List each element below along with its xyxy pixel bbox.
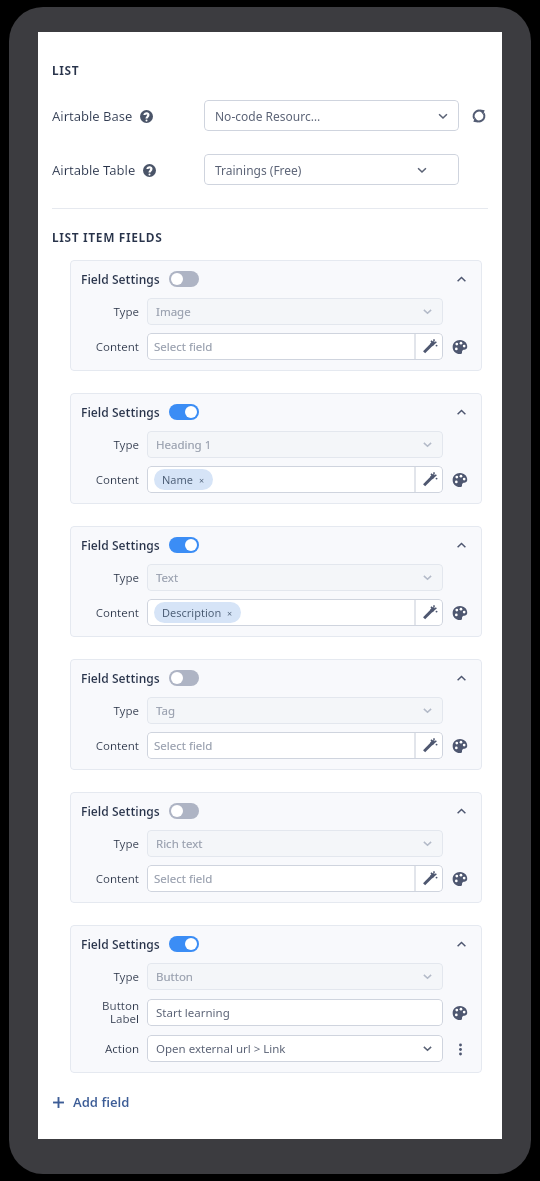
button[interactable]: Enabled — [169, 404, 199, 420]
staticText: No-code Resources (Softr.io Temp… — [215, 108, 323, 124]
staticText: Content — [81, 339, 139, 355]
staticText: Type — [81, 437, 139, 453]
button[interactable]: No-code Resources (Softr.io Temp… — [204, 100, 459, 131]
other: Styles — [452, 738, 468, 754]
button[interactable]: Trainings (Free) — [204, 154, 459, 185]
staticText: Open external url > Link — [156, 1041, 286, 1057]
button[interactable]: Field Settings — [70, 526, 482, 637]
button[interactable]: Description — [147, 599, 443, 626]
button[interactable]: Styles — [449, 1002, 471, 1024]
staticText: Field Settings — [81, 404, 160, 420]
staticText: Heading 1 — [156, 437, 212, 453]
staticText: Name — [162, 472, 194, 487]
button[interactable]: Auto fill — [415, 732, 443, 759]
button[interactable]: Start learning — [147, 999, 443, 1026]
staticText: Field Settings — [81, 670, 160, 686]
button[interactable]: Field Settings — [70, 659, 482, 770]
button[interactable]: Image — [147, 298, 443, 325]
button[interactable]: Field Settings — [70, 393, 482, 504]
staticText: Type — [81, 703, 139, 719]
button[interactable]: Field Settings — [70, 925, 482, 1073]
staticText: Start learning — [156, 1005, 230, 1021]
staticText: Add field — [73, 1093, 130, 1111]
staticText: Button Label — [81, 998, 139, 1027]
staticText: Airtable Table — [52, 161, 136, 179]
button[interactable]: Add field — [52, 1090, 130, 1114]
staticText: Type — [81, 304, 139, 320]
staticText: Airtable Base — [52, 107, 133, 125]
button[interactable]: Heading 1 — [147, 431, 443, 458]
button[interactable]: Name — [147, 466, 443, 493]
button[interactable]: Disabled — [169, 670, 199, 686]
button[interactable]: Styles — [449, 469, 471, 491]
button[interactable]: Collapse — [451, 934, 471, 954]
button[interactable]: Select field — [147, 732, 443, 759]
button[interactable]: Text — [147, 564, 443, 591]
other: Refresh — [470, 107, 488, 125]
staticText: Action — [81, 1041, 139, 1057]
other: Styles — [452, 472, 468, 488]
button[interactable]: Auto fill — [415, 865, 443, 892]
button[interactable]: Disabled — [169, 803, 199, 819]
button[interactable]: Field Settings — [70, 792, 482, 903]
staticText: × — [199, 474, 205, 486]
staticText: Trainings (Free) — [215, 162, 302, 178]
staticText: Field Settings — [81, 271, 160, 287]
button[interactable]: Open external url > Link — [147, 1035, 443, 1062]
staticText: Text — [156, 570, 179, 586]
button[interactable]: Button — [147, 963, 443, 990]
button[interactable]: Enabled — [169, 936, 199, 952]
staticText: Content — [81, 472, 139, 488]
staticText: Tag — [156, 703, 175, 719]
button[interactable]: Select field — [147, 333, 443, 360]
other: More options — [453, 1042, 468, 1057]
other: Styles — [452, 871, 468, 887]
other: Styles — [452, 1005, 468, 1021]
button[interactable]: Collapse — [451, 269, 471, 289]
other: Styles — [452, 339, 468, 355]
staticText: Select field — [154, 738, 213, 754]
button[interactable]: Rich text — [147, 830, 443, 857]
button[interactable]: Refresh — [469, 105, 488, 127]
button[interactable]: Styles — [449, 336, 471, 358]
button[interactable]: Select field — [147, 865, 443, 892]
staticText: Content — [81, 605, 139, 621]
staticText: Field Settings — [81, 936, 160, 952]
staticText: Content — [81, 871, 139, 887]
staticText: Type — [81, 570, 139, 586]
staticText: Content — [81, 738, 139, 754]
staticText: Field Settings — [81, 803, 160, 819]
staticText: Type — [81, 969, 139, 985]
staticText: Type — [81, 836, 139, 852]
staticText: Field Settings — [81, 537, 160, 553]
button[interactable]: More options — [449, 1038, 471, 1060]
button[interactable]: Tag — [147, 697, 443, 724]
button[interactable]: Auto fill — [415, 466, 443, 493]
button[interactable]: Collapse — [451, 801, 471, 821]
button[interactable]: Disabled — [169, 271, 199, 287]
button[interactable]: Collapse — [451, 668, 471, 688]
staticText: Description — [162, 605, 222, 620]
staticText: LIST — [52, 62, 80, 78]
button[interactable]: Styles — [449, 868, 471, 890]
staticText: Image — [156, 304, 191, 320]
button[interactable]: Auto fill — [415, 333, 443, 360]
staticText: Rich text — [156, 836, 203, 852]
staticText: Select field — [154, 339, 213, 355]
button[interactable]: Auto fill — [415, 599, 443, 626]
button[interactable]: Styles — [449, 602, 471, 624]
other: Styles — [452, 605, 468, 621]
staticText: × — [227, 607, 233, 619]
button[interactable]: Styles — [449, 735, 471, 757]
button[interactable]: Field Settings — [70, 260, 482, 371]
button[interactable]: Collapse — [451, 402, 471, 422]
staticText: Select field — [154, 871, 213, 887]
button[interactable]: Collapse — [451, 535, 471, 555]
button[interactable]: Enabled — [169, 537, 199, 553]
staticText: Button — [156, 969, 193, 985]
staticText: LIST ITEM FIELDS — [52, 229, 163, 245]
